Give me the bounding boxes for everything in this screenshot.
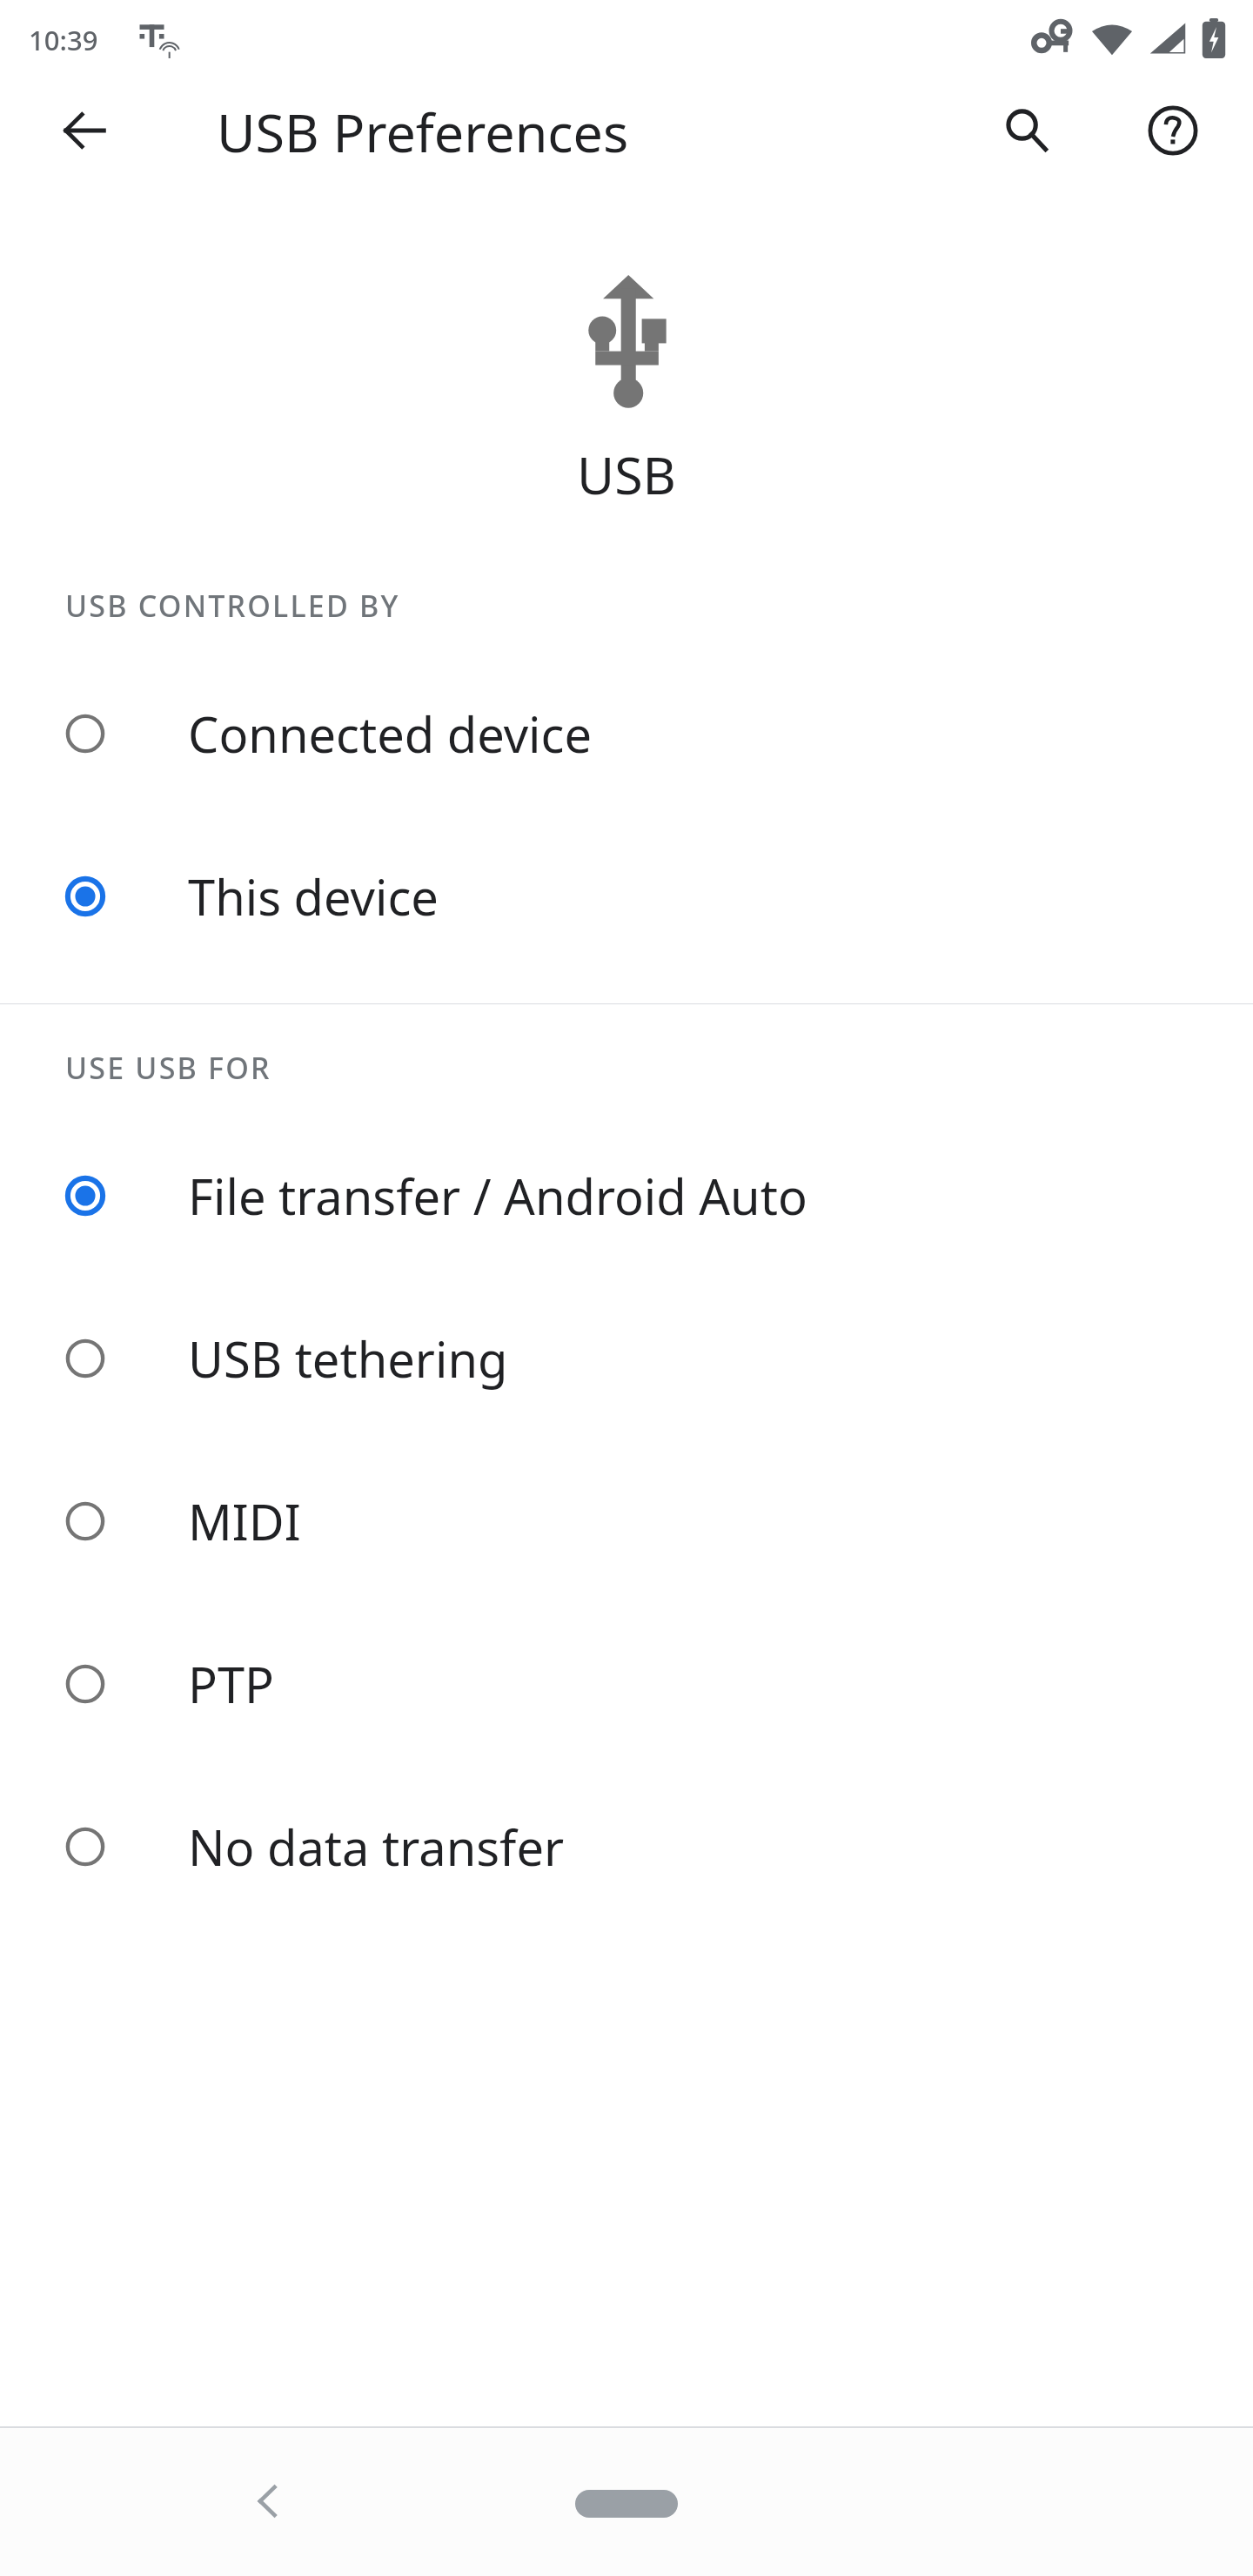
staticText: PTP xyxy=(188,1651,274,1717)
staticText: This device xyxy=(188,863,439,929)
button[interactable]: Help xyxy=(1126,84,1220,178)
button[interactable]: No data transfer xyxy=(0,1765,1253,1928)
staticText: USB tethering xyxy=(188,1325,508,1392)
staticText: MIDI xyxy=(188,1488,301,1554)
button[interactable]: Search xyxy=(980,84,1074,178)
button[interactable]: Connected device xyxy=(0,652,1253,815)
button[interactable]: Back xyxy=(37,84,131,178)
staticText: Connected device xyxy=(188,701,593,767)
staticText: USE USB FOR xyxy=(65,1048,271,1088)
button[interactable]: USB tethering xyxy=(0,1277,1253,1439)
staticText: USB CONTROLLED BY xyxy=(65,586,400,626)
staticText: No data transfer xyxy=(188,1814,565,1880)
button[interactable]: Back xyxy=(216,2447,324,2555)
staticText: File transfer / Android Auto xyxy=(188,1163,807,1229)
button[interactable]: This device xyxy=(0,815,1253,977)
button[interactable]: Home xyxy=(561,2461,692,2546)
button[interactable]: MIDI xyxy=(0,1439,1253,1602)
button[interactable]: File transfer / Android Auto xyxy=(0,1114,1253,1277)
staticText: USB Preferences xyxy=(217,96,629,168)
button[interactable]: PTP xyxy=(0,1602,1253,1765)
staticText: USB xyxy=(577,439,676,509)
staticText: 10:39 xyxy=(29,22,98,58)
